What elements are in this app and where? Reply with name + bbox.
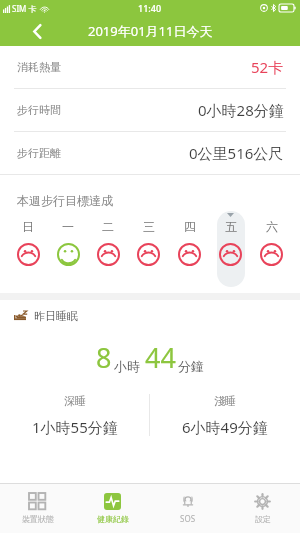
staticText: 步行距離 (17, 146, 61, 160)
button[interactable]: 裝置狀態 (0, 484, 75, 533)
staticText: 裝置狀態 (22, 514, 54, 524)
staticText: 昨日睡眠 (34, 309, 78, 323)
staticText: 深睡 (64, 394, 86, 408)
button[interactable]: Back (22, 16, 52, 46)
staticText: 步行時間 (17, 103, 61, 117)
button[interactable]: Day 五 status (210, 243, 251, 266)
staticText: 分鐘 (178, 358, 204, 374)
staticText: 淺睡 (214, 394, 236, 408)
staticText: 0公里516公尺 (189, 143, 284, 163)
button[interactable]: Day 日 status (8, 243, 48, 266)
button[interactable]: 健康紀錄 (75, 484, 150, 533)
staticText: 五 (225, 219, 237, 234)
staticText: 一 (62, 219, 74, 234)
staticText: 1小時55分鐘 (32, 417, 118, 437)
staticText: 本週步行目標達成 (17, 193, 113, 208)
staticText: 三 (143, 219, 155, 234)
button[interactable]: 深睡 (0, 394, 149, 452)
staticText: 44 (145, 339, 176, 376)
staticText: 健康紀錄 (97, 514, 129, 524)
staticText: 四 (184, 219, 196, 234)
button[interactable]: 消耗熱量 (0, 46, 300, 88)
button[interactable]: Day 二 status (88, 243, 128, 266)
button[interactable]: Day 六 status (251, 243, 292, 266)
staticText: 0小時28分鐘 (198, 100, 284, 120)
staticText: 日 (22, 219, 34, 234)
staticText: 11:40 (138, 2, 162, 14)
staticText: 52卡 (251, 57, 284, 77)
staticText: SOS (180, 513, 196, 524)
staticText: 小時 (114, 358, 140, 374)
button[interactable]: SOS (150, 484, 225, 533)
staticText: 6小時49分鐘 (182, 417, 268, 437)
button[interactable]: 步行時間 (0, 89, 300, 131)
button[interactable]: Day 一 status (48, 243, 88, 266)
button[interactable]: 設定 (225, 484, 300, 533)
button[interactable]: 淺睡 (150, 394, 300, 452)
staticText: 六 (266, 219, 278, 234)
staticText: 消耗熱量 (17, 60, 61, 74)
staticText: SIM 卡 (12, 3, 37, 14)
button[interactable]: 步行距離 (0, 132, 300, 174)
staticText: 8 (96, 339, 112, 376)
staticText: 二 (102, 219, 114, 234)
button[interactable]: Day 三 status (128, 243, 169, 266)
button[interactable]: Day 四 status (169, 243, 210, 266)
staticText: 設定 (255, 514, 271, 524)
staticText: 2019年01月11日今天 (88, 22, 213, 40)
